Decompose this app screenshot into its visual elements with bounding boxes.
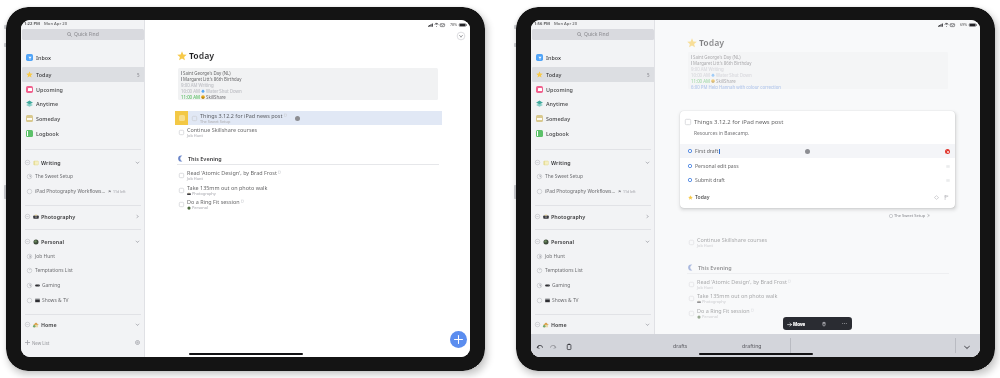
button[interactable]: Take 135mm out on photo walk [145,183,470,197]
button[interactable]: New To-Do [450,331,467,348]
button[interactable]: drafting [742,342,762,349]
button[interactable]: Saint George's Day (NL) [688,52,948,89]
button[interactable]: New List [531,336,655,349]
button[interactable]: Read 'Atomic Design', by Brad Frost [655,277,980,291]
button[interactable]: Take 135mm out on photo walk [655,291,980,305]
staticText: New List [32,340,50,346]
button[interactable]: Collapse sidebar [456,31,466,41]
staticText: Logbook [36,130,59,137]
button[interactable]: Do a Ring Fit session [145,197,470,211]
button[interactable]: Quick Find [22,29,144,40]
button[interactable]: More options [841,320,848,327]
staticText: Temptations List [35,267,73,274]
button[interactable]: Continue Skillshare courses [655,235,980,249]
button[interactable]: Anytime [21,96,145,111]
button[interactable]: Home [531,318,655,331]
button[interactable]: Redo [547,341,558,352]
staticText: This Evening [188,155,222,162]
button[interactable]: The Sweet Setup [21,169,145,183]
staticText: Read 'Atomic Design', by Brad Frost [697,278,787,285]
button[interactable]: Today [21,67,145,82]
button[interactable]: Job Hunt [21,249,145,263]
button[interactable]: Today [531,67,655,82]
staticText: Today [699,37,725,49]
staticText: 1:56 PM [534,21,551,27]
staticText: Logbook [546,130,569,137]
button[interactable]: Job Hunt [531,249,655,263]
button[interactable]: Logbook [531,126,655,141]
button[interactable]: Shows & TV [531,293,655,307]
button[interactable]: New List [21,336,145,349]
button[interactable]: Submit draft [680,173,955,187]
button[interactable]: Continue Skillshare courses [145,125,470,139]
button[interactable]: Undo [534,341,545,352]
button[interactable]: iPad Photography Workflows... [531,184,655,198]
button[interactable]: Saint George's Day (NL) [178,68,438,100]
button[interactable]: Temptations List [21,263,145,277]
button[interactable]: Temptations List [531,263,655,277]
button[interactable]: Writing [531,156,655,169]
staticText: This Evening [698,264,732,271]
button[interactable]: Home [21,318,145,331]
button[interactable]: Writing [21,156,145,169]
button[interactable]: Photography [531,210,655,223]
button[interactable]: Upcoming [21,82,145,97]
button[interactable]: Personal [531,235,655,248]
button[interactable]: Inbox [21,50,145,65]
staticText: Job Hunt [187,133,203,138]
button[interactable]: Move [787,321,806,327]
staticText: Anytime [36,100,59,107]
button[interactable]: Someday [21,111,145,126]
staticText: Personal [702,314,718,319]
button[interactable]: Settings [134,339,141,346]
staticText: Margaret Litt's 86th Birthday [693,60,752,66]
staticText: Writing [41,159,61,166]
button[interactable]: Flag [943,194,950,201]
button[interactable]: drafts [673,342,688,349]
button[interactable]: iPad Photography Workflows... [21,184,145,198]
button[interactable]: Someday [531,111,655,126]
button[interactable]: Shows & TV [21,293,145,307]
button[interactable]: Tags [933,194,940,201]
staticText: Shows & TV [42,297,69,304]
staticText: Shows & TV [552,297,579,304]
button[interactable] [175,111,442,125]
button[interactable]: Gaming [21,278,145,292]
button[interactable]: Do a Ring Fit session [655,306,980,320]
staticText: Personal [41,238,64,245]
staticText: First draft [695,148,719,155]
button[interactable]: Hide keyboard [961,341,972,352]
staticText: iPad Photography Workflows... [545,188,616,195]
button[interactable]: First draft [680,144,955,158]
staticText: ⚑ [618,189,622,193]
staticText: Today [695,194,710,201]
button[interactable]: Paste [563,341,574,352]
staticText: Saint George's Day (NL) [183,70,231,76]
button[interactable]: Upcoming [531,82,655,97]
staticText: Home [551,321,567,328]
button[interactable]: Quick Find [532,29,654,40]
button[interactable]: Photography [21,210,145,223]
button[interactable]: Gaming [531,278,655,292]
button[interactable]: Things 3.12.2 for iPad news post [680,111,955,208]
button[interactable]: Inbox [531,50,655,65]
staticText: Do a Ring Fit session [697,307,750,314]
staticText: Quick Find [584,31,609,38]
staticText: Photography [551,213,586,220]
button[interactable]: The Sweet Setup [889,213,930,218]
staticText: Resources in Basecamp. [694,130,750,137]
button[interactable]: Delete [945,149,950,154]
staticText: Today [189,50,215,62]
staticText: Home [41,321,57,328]
button[interactable]: Personal [21,235,145,248]
button[interactable]: Anytime [531,96,655,111]
button[interactable]: Read 'Atomic Design', by Brad Frost [145,168,470,182]
button[interactable]: Logbook [21,126,145,141]
button[interactable]: Delete [820,320,827,327]
button[interactable]: Today [680,191,955,204]
button[interactable]: The Sweet Setup [531,169,655,183]
staticText: Anytime [546,100,569,107]
staticText: Water Shut Down [716,72,752,78]
button[interactable]: Personal edit pass [680,159,955,173]
